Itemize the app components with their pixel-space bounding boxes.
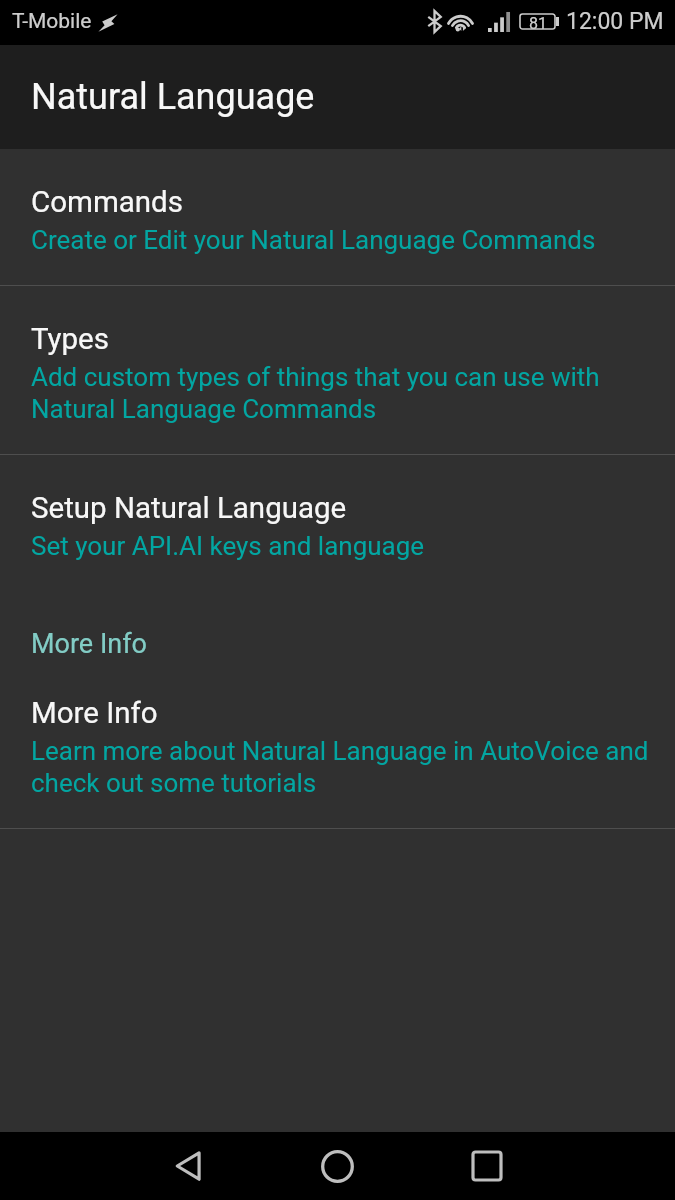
staticText: Create or Edit your Natural Language Com…	[31, 225, 596, 255]
button[interactable]: Back	[147, 1132, 231, 1200]
staticText: Set your API.AI keys and language	[31, 531, 425, 561]
staticText: More Info	[31, 696, 158, 731]
staticText: Add custom types of things that you can …	[31, 362, 663, 424]
staticText: Types	[31, 322, 109, 357]
button[interactable]: Types	[0, 286, 675, 454]
staticText: Commands	[31, 185, 183, 220]
button[interactable]: Recent apps	[445, 1132, 529, 1200]
staticText: Setup Natural Language	[31, 491, 347, 526]
button[interactable]: Setup Natural Language	[0, 455, 675, 591]
staticText: Natural Language	[31, 76, 315, 118]
staticText: Learn more about Natural Language in Aut…	[31, 736, 663, 798]
staticText: 81	[529, 14, 547, 29]
button[interactable]: Commands	[0, 149, 675, 285]
staticText: T-Mobile	[12, 9, 92, 34]
staticText: More Info	[31, 628, 147, 660]
staticText: 12:00 PM	[566, 8, 664, 35]
button[interactable]: More Info	[0, 660, 675, 828]
button[interactable]: Home	[295, 1132, 379, 1200]
